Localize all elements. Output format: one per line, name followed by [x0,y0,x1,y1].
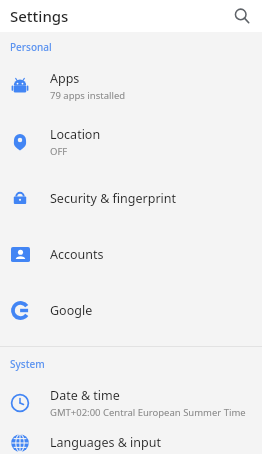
button[interactable]: Google [0,282,262,338]
staticText: System [10,357,45,371]
staticText: 79 apps installed [50,89,126,102]
staticText: Settings [10,6,69,26]
staticText: GMT+02:00 Central European Summer Time [50,406,246,419]
button[interactable]: Apps [0,58,262,114]
staticText: OFF [50,145,68,158]
staticText: Languages & input [50,434,161,451]
staticText: Date & time [50,387,120,404]
button[interactable]: Languages & input [0,431,262,454]
staticText: Location [50,126,101,143]
button[interactable]: Accounts [0,226,262,282]
staticText: Google [50,302,93,319]
button[interactable]: Location [0,114,262,170]
button[interactable]: Date & time [0,375,262,431]
staticText: Apps [50,70,80,87]
button[interactable]: Search [228,2,256,30]
button[interactable]: Security & fingerprint [0,170,262,226]
staticText: Security & fingerprint [50,190,177,207]
staticText: Personal [10,40,52,54]
staticText: Accounts [50,246,104,263]
